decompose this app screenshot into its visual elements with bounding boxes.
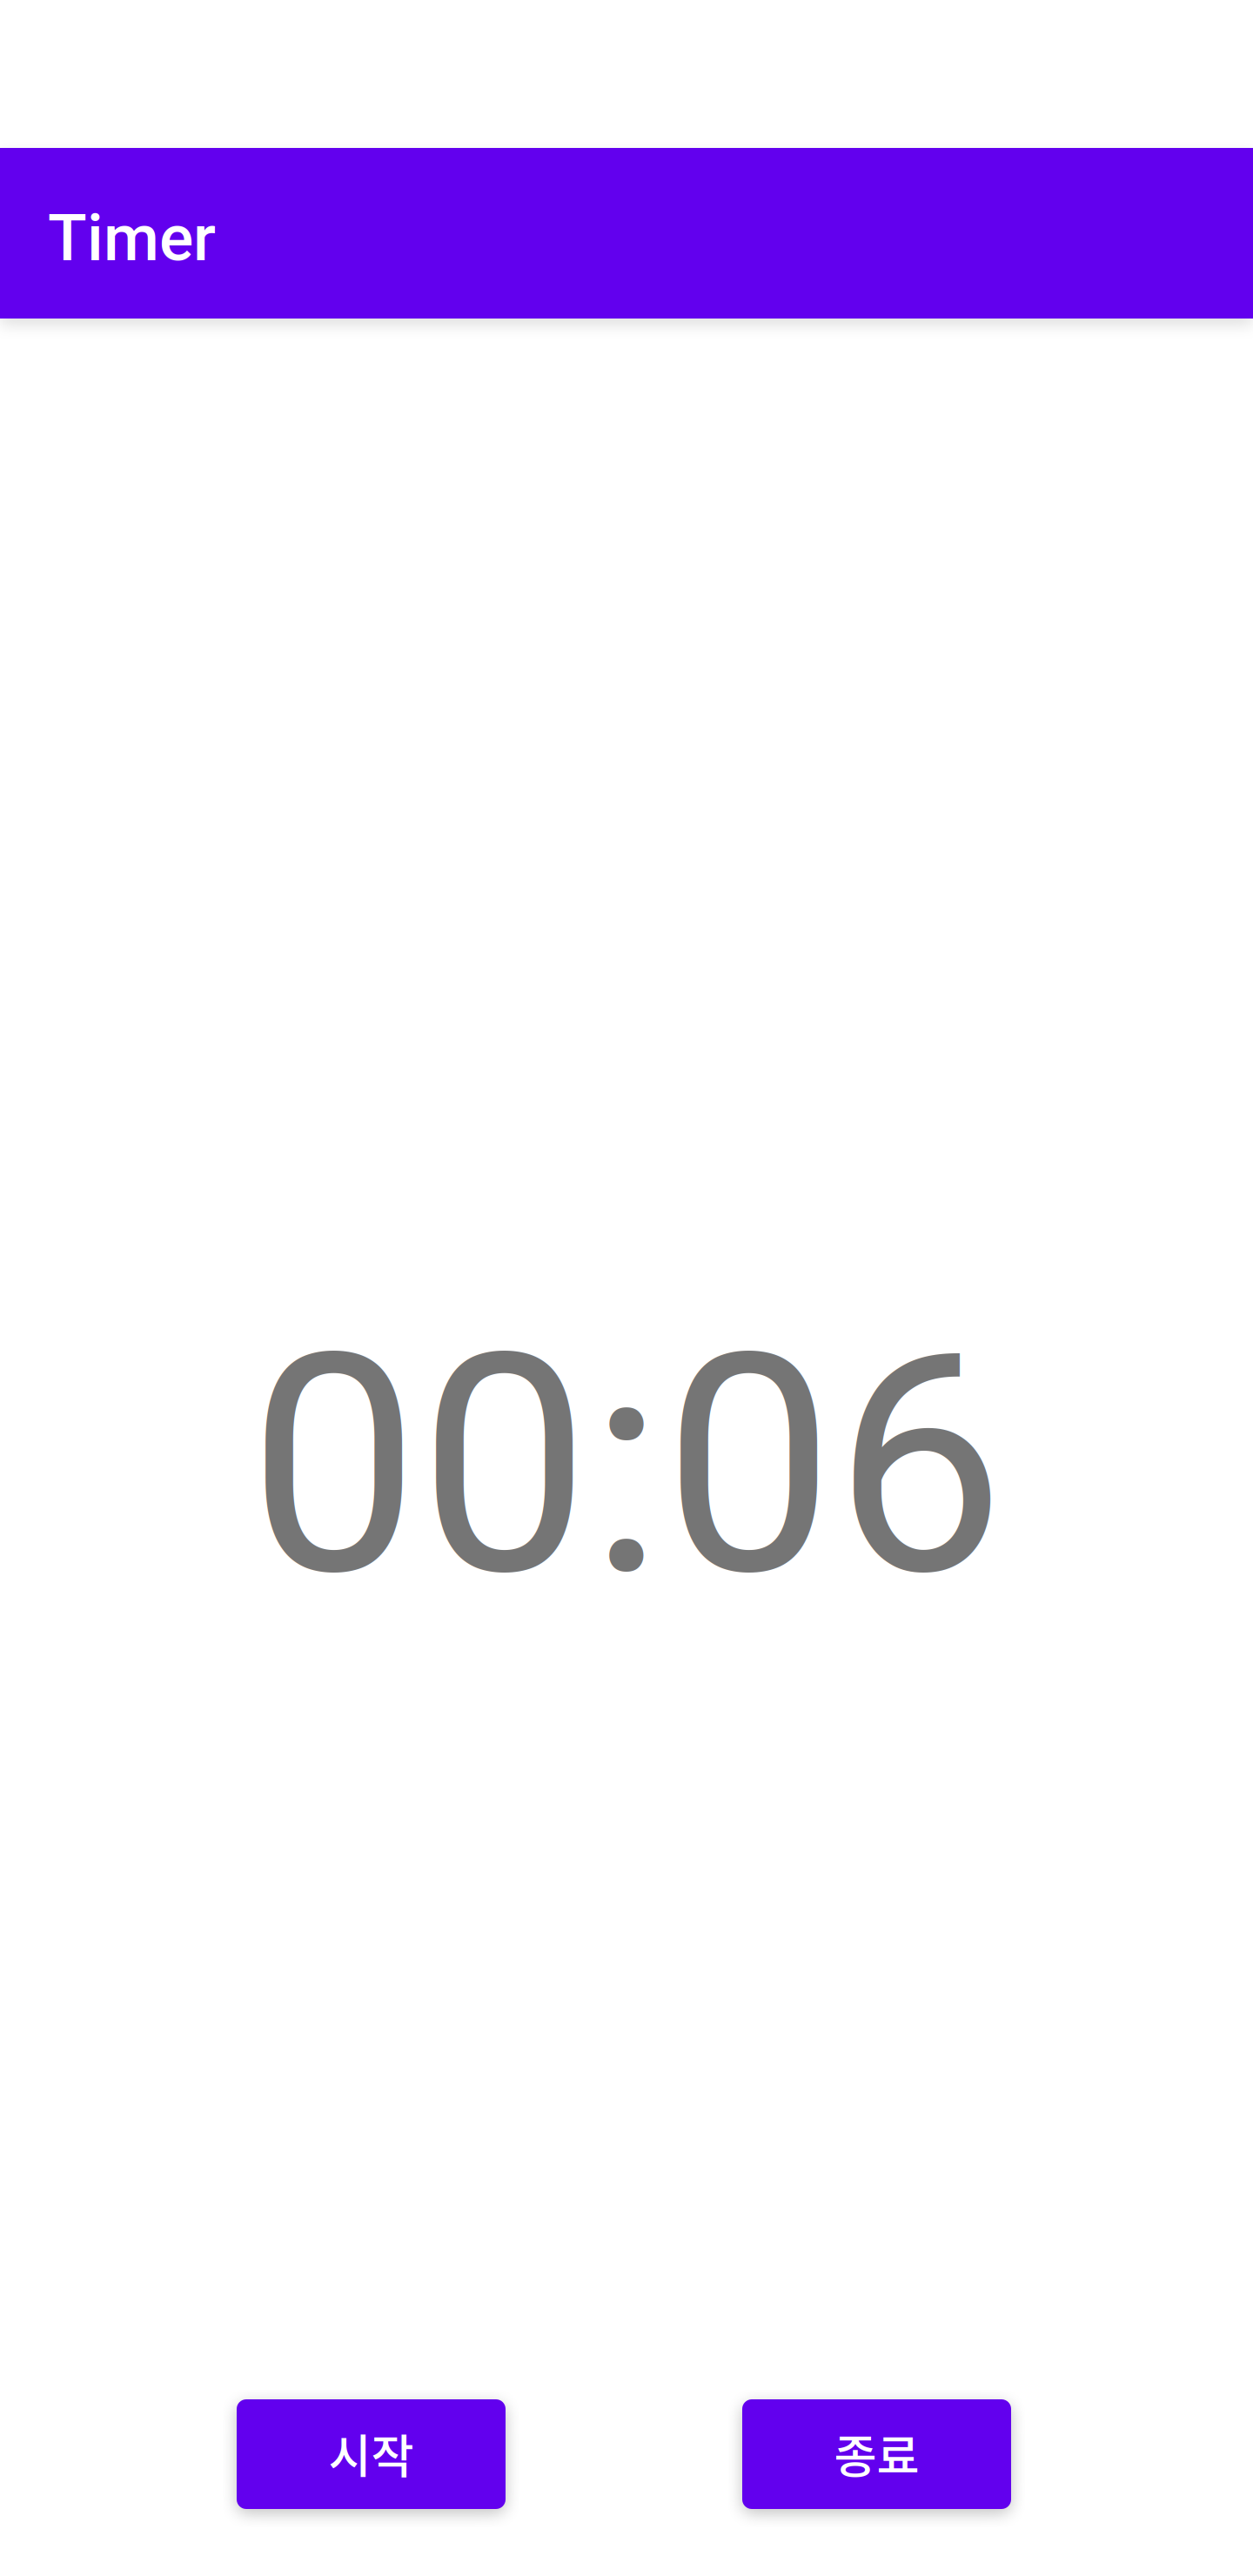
button[interactable]: 시작 bbox=[237, 2399, 506, 2509]
staticText: 종료 bbox=[834, 2420, 919, 2487]
staticText: 00:06 bbox=[248, 1288, 1005, 1644]
staticText: Timer bbox=[48, 201, 216, 276]
button[interactable]: 종료 bbox=[742, 2399, 1011, 2509]
staticText: 시작 bbox=[328, 2420, 414, 2487]
